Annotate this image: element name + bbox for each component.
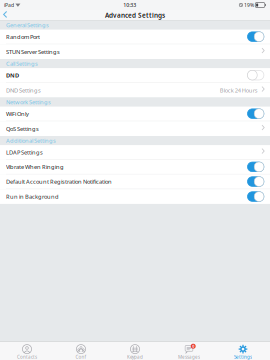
- button[interactable]: QoS Settings: [0, 121, 270, 136]
- button[interactable]: Contacts: [0, 341, 54, 360]
- button[interactable]: LDAP Settings: [0, 145, 270, 160]
- staticText: iPad: [4, 2, 14, 8]
- staticText: DND Settings: [6, 86, 41, 94]
- button[interactable]: 0: [162, 341, 216, 360]
- staticText: 19%: [244, 2, 254, 8]
- staticText: 10:33: [123, 1, 136, 8]
- staticText: Settings: [234, 354, 252, 360]
- staticText: Block 24 Hours: [220, 86, 258, 94]
- staticText: LDAP Settings: [6, 148, 43, 156]
- button[interactable]: Keypad: [108, 341, 162, 360]
- staticText: Advanced Settings: [105, 11, 165, 19]
- button[interactable]: Run in Background: [0, 189, 270, 204]
- button[interactable]: Back: [0, 10, 11, 20]
- staticText: Random Port: [6, 33, 40, 40]
- staticText: Vibrate When Ringing: [6, 163, 64, 171]
- staticText: Network Settings: [6, 98, 51, 106]
- button[interactable]: Default Account Registration Notificatio…: [0, 174, 270, 189]
- button[interactable]: Conf: [54, 341, 108, 360]
- button[interactable]: WiFi Only: [0, 107, 270, 121]
- staticText: Run in Background: [6, 193, 59, 200]
- staticText: Messages: [178, 354, 200, 360]
- button[interactable]: STUN Server Settings: [0, 44, 270, 59]
- staticText: Contacts: [17, 354, 37, 360]
- staticText: QoS Settings: [6, 125, 39, 132]
- button[interactable]: Settings: [216, 341, 270, 360]
- staticText: Additional Settings: [6, 137, 56, 144]
- staticText: 0: [192, 344, 194, 349]
- button[interactable]: DND: [0, 68, 270, 83]
- staticText: DND: [6, 71, 19, 79]
- staticText: Conf: [75, 354, 86, 360]
- staticText: Call Settings: [6, 60, 38, 67]
- staticText: WiFi Only: [6, 110, 29, 117]
- staticText: STUN Server Settings: [6, 48, 60, 55]
- staticText: Keypad: [127, 354, 143, 360]
- button[interactable]: Random Port: [0, 30, 270, 44]
- button[interactable]: Vibrate When Ringing: [0, 160, 270, 174]
- staticText: General Settings: [6, 21, 49, 29]
- staticText: Default Account Registration Notificatio…: [6, 178, 112, 185]
- button[interactable]: DND Settings: [0, 83, 270, 97]
